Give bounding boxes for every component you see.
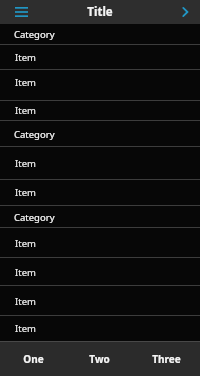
button[interactable]: One: [0, 342, 66, 376]
staticText: Three: [152, 352, 181, 366]
button[interactable]: Item: [0, 147, 200, 180]
button[interactable]: Category: [0, 24, 200, 45]
button[interactable]: Item: [0, 70, 200, 95]
staticText: Item: [15, 51, 36, 64]
staticText: Category: [14, 28, 55, 41]
staticText: Item: [15, 104, 36, 117]
staticText: One: [23, 352, 44, 366]
button[interactable]: Category: [0, 206, 200, 228]
button[interactable]: Item: [0, 45, 200, 70]
staticText: Category: [14, 211, 55, 224]
staticText: Item: [15, 76, 36, 89]
staticText: Item: [15, 157, 36, 170]
staticText: Item: [15, 237, 36, 250]
staticText: Category: [14, 128, 55, 141]
button[interactable]: Item: [0, 180, 200, 204]
staticText: Title: [87, 4, 113, 20]
button[interactable]: Forward: [175, 2, 195, 22]
staticText: Item: [15, 322, 36, 335]
staticText: Item: [15, 295, 36, 308]
staticText: Two: [89, 352, 110, 366]
button[interactable]: Open navigation menu: [10, 1, 32, 23]
staticText: Item: [15, 266, 36, 279]
button[interactable]: Two: [66, 342, 133, 376]
button[interactable]: Item: [0, 286, 200, 316]
button[interactable]: Category: [0, 121, 200, 147]
button[interactable]: Three: [133, 342, 200, 376]
button[interactable]: Item: [0, 258, 200, 286]
button[interactable]: Item: [0, 228, 200, 258]
button[interactable]: Item: [0, 101, 200, 120]
button[interactable]: Item: [0, 316, 200, 341]
staticText: Item: [15, 186, 36, 199]
